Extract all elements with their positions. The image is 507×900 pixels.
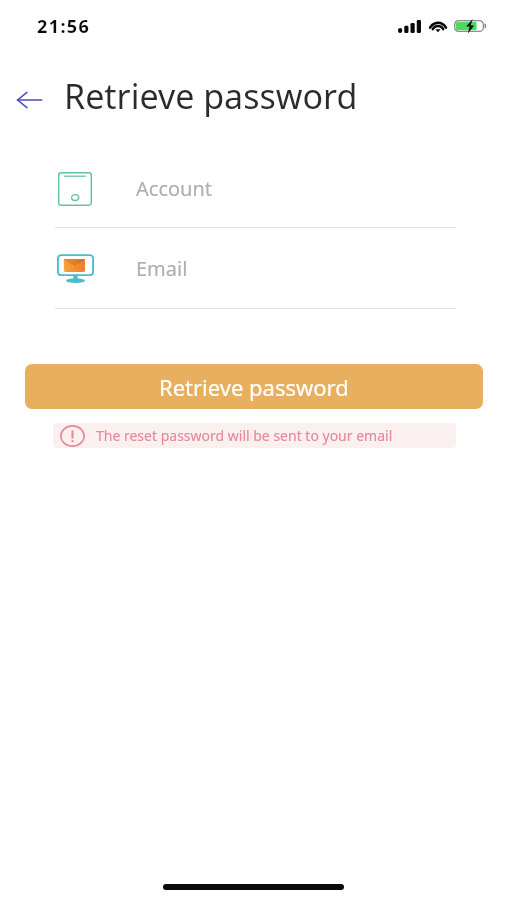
- button[interactable]: [55, 160, 456, 228]
- staticText: 21:56: [37, 14, 91, 39]
- staticText: Retrieve password: [64, 73, 358, 119]
- button[interactable]: Retrieve password: [25, 364, 483, 409]
- staticText: Retrieve password: [159, 372, 349, 402]
- button[interactable]: Back: [8, 79, 50, 121]
- staticText: The reset password will be sent to your …: [96, 426, 393, 445]
- button[interactable]: [55, 241, 456, 309]
- staticText: Account: [136, 175, 213, 202]
- staticText: Email: [136, 255, 188, 282]
